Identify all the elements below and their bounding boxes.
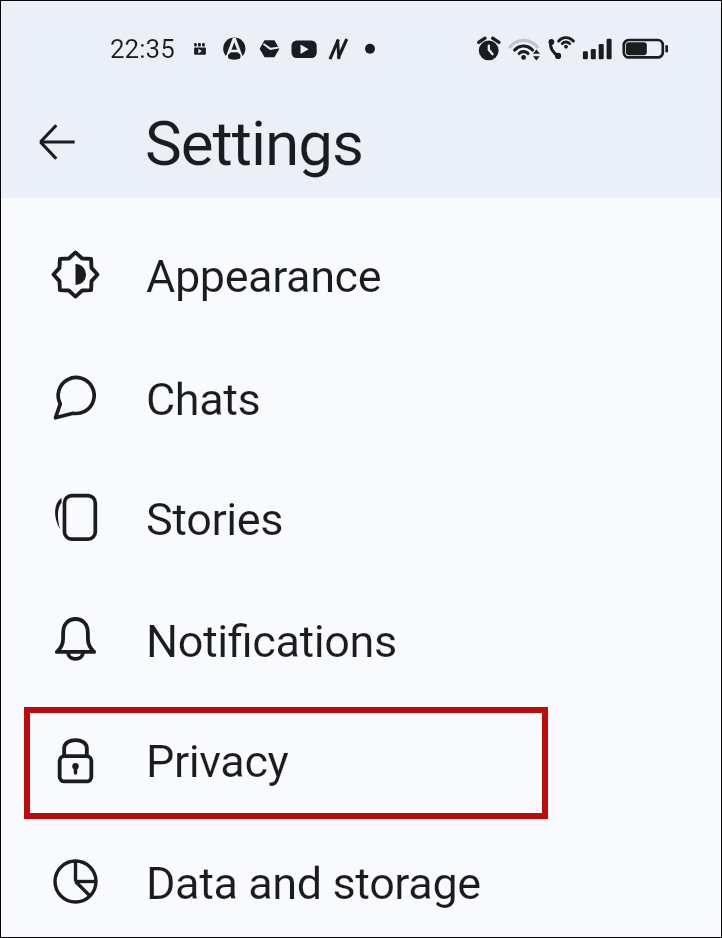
button[interactable]: Notifications bbox=[0, 578, 722, 699]
staticText: Appearance bbox=[146, 250, 382, 303]
button[interactable]: Chats bbox=[0, 336, 722, 457]
button[interactable]: Back bbox=[27, 112, 87, 172]
button[interactable]: Appearance bbox=[0, 213, 722, 334]
staticText: Privacy bbox=[146, 735, 289, 788]
staticText: Settings bbox=[145, 107, 363, 180]
button[interactable]: Data and storage bbox=[0, 820, 722, 938]
button[interactable]: Privacy bbox=[0, 698, 722, 819]
staticText: Data and storage bbox=[146, 857, 481, 910]
button[interactable]: Stories bbox=[0, 456, 722, 577]
staticText: Chats bbox=[146, 373, 261, 426]
staticText: Stories bbox=[146, 493, 284, 546]
staticText: 22:35 bbox=[110, 34, 175, 64]
staticText: Notifications bbox=[146, 615, 397, 668]
